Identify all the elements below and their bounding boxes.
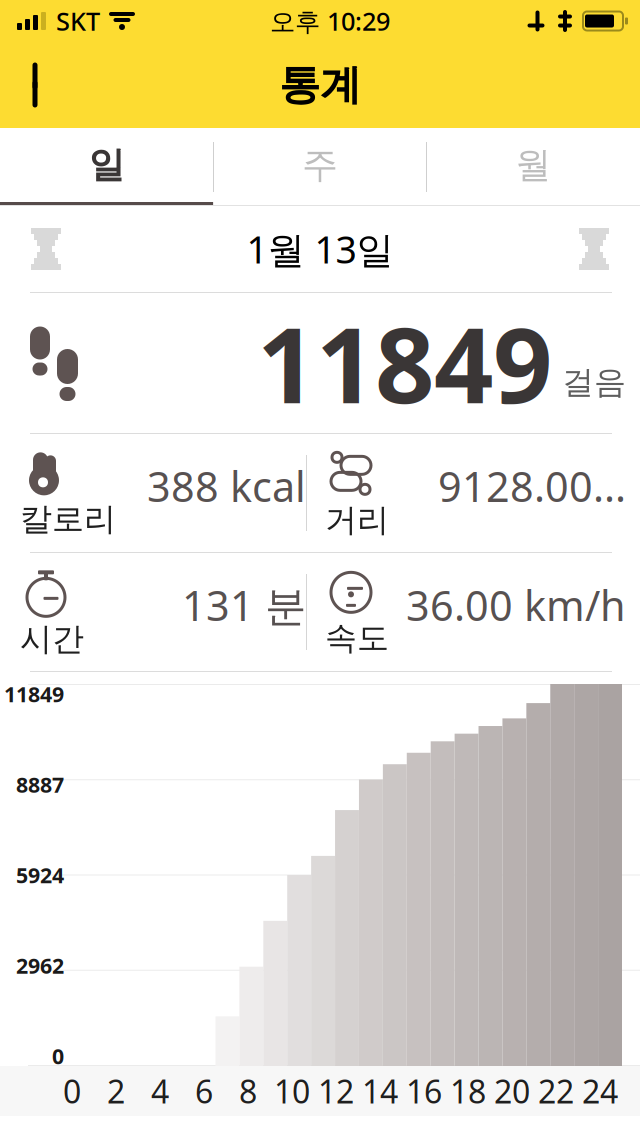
staticText: 시간 (20, 619, 84, 659)
staticText: 22 (538, 1070, 574, 1112)
staticText: 8 (239, 1070, 257, 1112)
staticText: 통계 (279, 60, 361, 110)
staticText: 9128.00... (438, 459, 626, 513)
staticText: 11849 (257, 294, 552, 432)
staticText: 2 (107, 1070, 125, 1112)
staticText: 20 (494, 1070, 530, 1112)
staticText: 오후 10:29 (270, 4, 390, 38)
staticText: 칼로리 (20, 499, 116, 539)
staticText: 14 (362, 1070, 398, 1112)
staticText: 11849 (4, 680, 64, 708)
staticText: 월 (515, 143, 551, 187)
button[interactable]: Next day (548, 209, 640, 289)
button[interactable]: Previous day (0, 209, 92, 289)
staticText: 8887 (16, 770, 64, 799)
staticText: 0 (52, 1042, 64, 1070)
staticText: 36.00 km/h (406, 578, 626, 632)
staticText: 6 (195, 1070, 213, 1112)
button[interactable]: Back (6, 51, 74, 119)
staticText: 1월 13일 (246, 224, 393, 274)
button[interactable]: 일 (0, 128, 213, 206)
staticText: 388 kcal (147, 459, 306, 513)
staticText: 2962 (16, 951, 64, 980)
staticText: 거리 (325, 500, 389, 540)
staticText: 12 (318, 1070, 354, 1112)
staticText: 주 (302, 143, 338, 187)
staticText: 16 (406, 1070, 442, 1112)
staticText: 4 (151, 1070, 169, 1112)
staticText: 속도 (325, 618, 389, 658)
staticText: 0 (63, 1070, 81, 1112)
button[interactable]: 월 (427, 128, 640, 206)
staticText: 걸음 (562, 363, 626, 402)
staticText: 10 (274, 1070, 310, 1112)
staticText: 24 (582, 1070, 618, 1112)
staticText: 5924 (16, 861, 64, 889)
staticText: SKT (56, 4, 100, 38)
staticText: 일 (89, 143, 125, 187)
button[interactable]: 주 (213, 128, 427, 206)
staticText: 18 (450, 1070, 486, 1112)
staticText: 131 분 (182, 578, 306, 632)
